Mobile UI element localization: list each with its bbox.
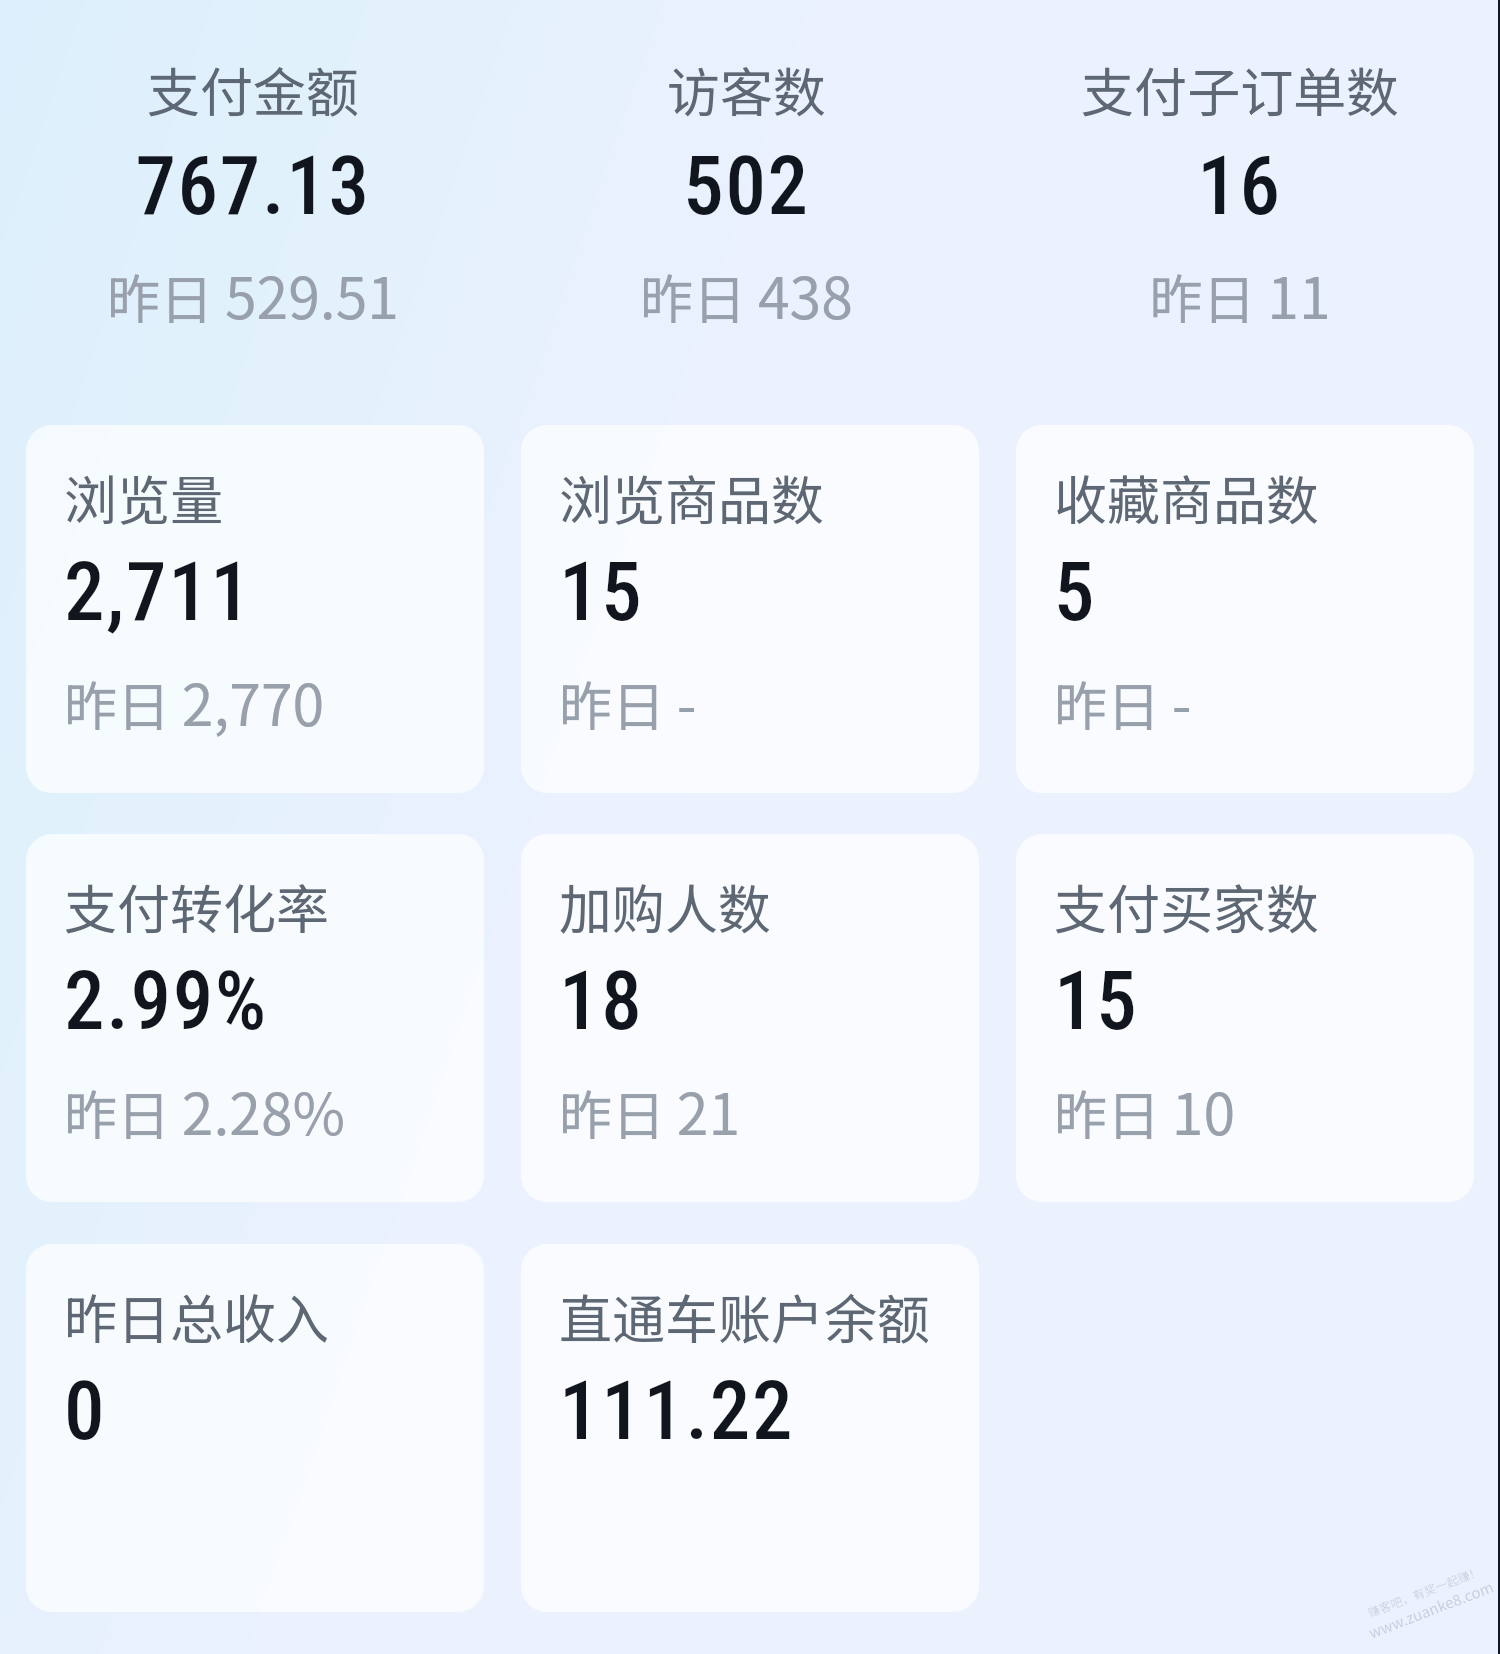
staticText: 5 bbox=[1054, 545, 1097, 640]
staticText: 直通车账户余额 bbox=[559, 1278, 930, 1355]
staticText: 111.22 bbox=[559, 1364, 795, 1459]
staticText: 2,711 bbox=[64, 545, 253, 640]
staticText: 昨日 529.51 bbox=[107, 253, 399, 336]
staticText: 浏览量 bbox=[64, 459, 223, 536]
staticText: 767.13 bbox=[135, 139, 371, 234]
staticText: 15 bbox=[1054, 954, 1139, 1049]
staticText: 昨日 21 bbox=[559, 1069, 741, 1152]
staticText: 昨日 438 bbox=[640, 253, 853, 336]
staticText: 赚客吧，有奖一起赚！ bbox=[1365, 1561, 1484, 1621]
button[interactable]: 浏览商品数 bbox=[521, 425, 979, 793]
button[interactable]: 支付买家数 bbox=[1016, 834, 1474, 1202]
staticText: 16 bbox=[1197, 139, 1282, 234]
button[interactable]: 收藏商品数 bbox=[1016, 425, 1474, 793]
staticText: 昨日 2,770 bbox=[64, 660, 325, 743]
staticText: 支付转化率 bbox=[64, 868, 329, 945]
staticText: 昨日 - bbox=[559, 660, 697, 743]
staticText: 昨日 2.28% bbox=[64, 1069, 346, 1152]
button[interactable]: 支付子订单数 bbox=[993, 51, 1486, 336]
staticText: 昨日总收入 bbox=[64, 1278, 329, 1355]
staticText: 18 bbox=[559, 954, 644, 1049]
staticText: 加购人数 bbox=[559, 868, 771, 945]
staticText: 2.99% bbox=[64, 954, 269, 1049]
staticText: 浏览商品数 bbox=[559, 459, 824, 536]
staticText: 昨日 11 bbox=[1149, 253, 1331, 336]
button[interactable]: 访客数 bbox=[500, 51, 993, 336]
staticText: 15 bbox=[559, 545, 644, 640]
button[interactable]: 浏览量 bbox=[26, 425, 484, 793]
button[interactable]: 支付转化率 bbox=[26, 834, 484, 1202]
staticText: 502 bbox=[683, 139, 810, 234]
staticText: 访客数 bbox=[667, 51, 826, 128]
staticText: www.zuanke8.com bbox=[1365, 1575, 1497, 1643]
button[interactable]: 直通车账户余额 bbox=[521, 1244, 979, 1612]
staticText: 支付金额 bbox=[147, 51, 359, 128]
staticText: 支付买家数 bbox=[1054, 868, 1319, 945]
staticText: 昨日 - bbox=[1054, 660, 1192, 743]
button[interactable]: 加购人数 bbox=[521, 834, 979, 1202]
staticText: 收藏商品数 bbox=[1054, 459, 1319, 536]
staticText: 昨日 10 bbox=[1054, 1069, 1236, 1152]
button[interactable]: 支付金额 bbox=[6, 51, 500, 336]
button[interactable]: 昨日总收入 bbox=[26, 1244, 484, 1612]
staticText: 0 bbox=[64, 1364, 107, 1459]
staticText: 支付子订单数 bbox=[1081, 51, 1399, 128]
